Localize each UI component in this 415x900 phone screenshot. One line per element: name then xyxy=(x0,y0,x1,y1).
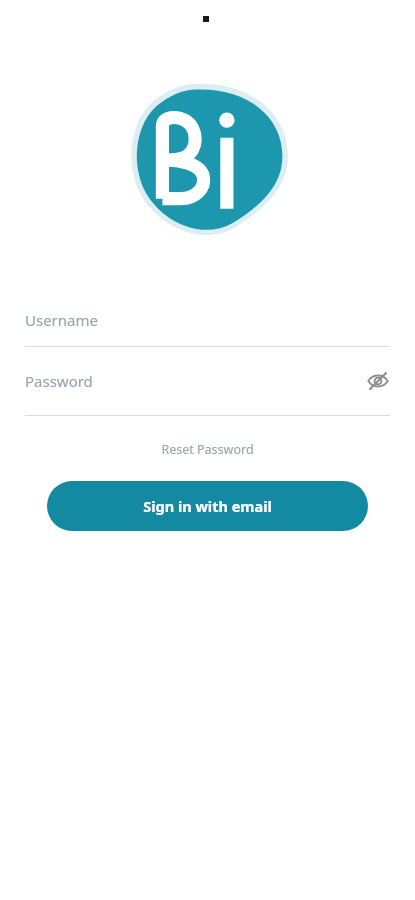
staticText: Sign in with email xyxy=(143,496,272,516)
staticText: Username xyxy=(25,310,98,330)
button[interactable]: Username xyxy=(0,294,415,346)
staticText: Password xyxy=(25,371,93,391)
button[interactable]: Password xyxy=(0,347,415,415)
button[interactable]: Reset Password xyxy=(151,437,264,462)
button[interactable]: Sign in with email xyxy=(47,481,368,531)
button[interactable]: Show password xyxy=(363,366,393,396)
staticText: Reset Password xyxy=(161,441,254,458)
